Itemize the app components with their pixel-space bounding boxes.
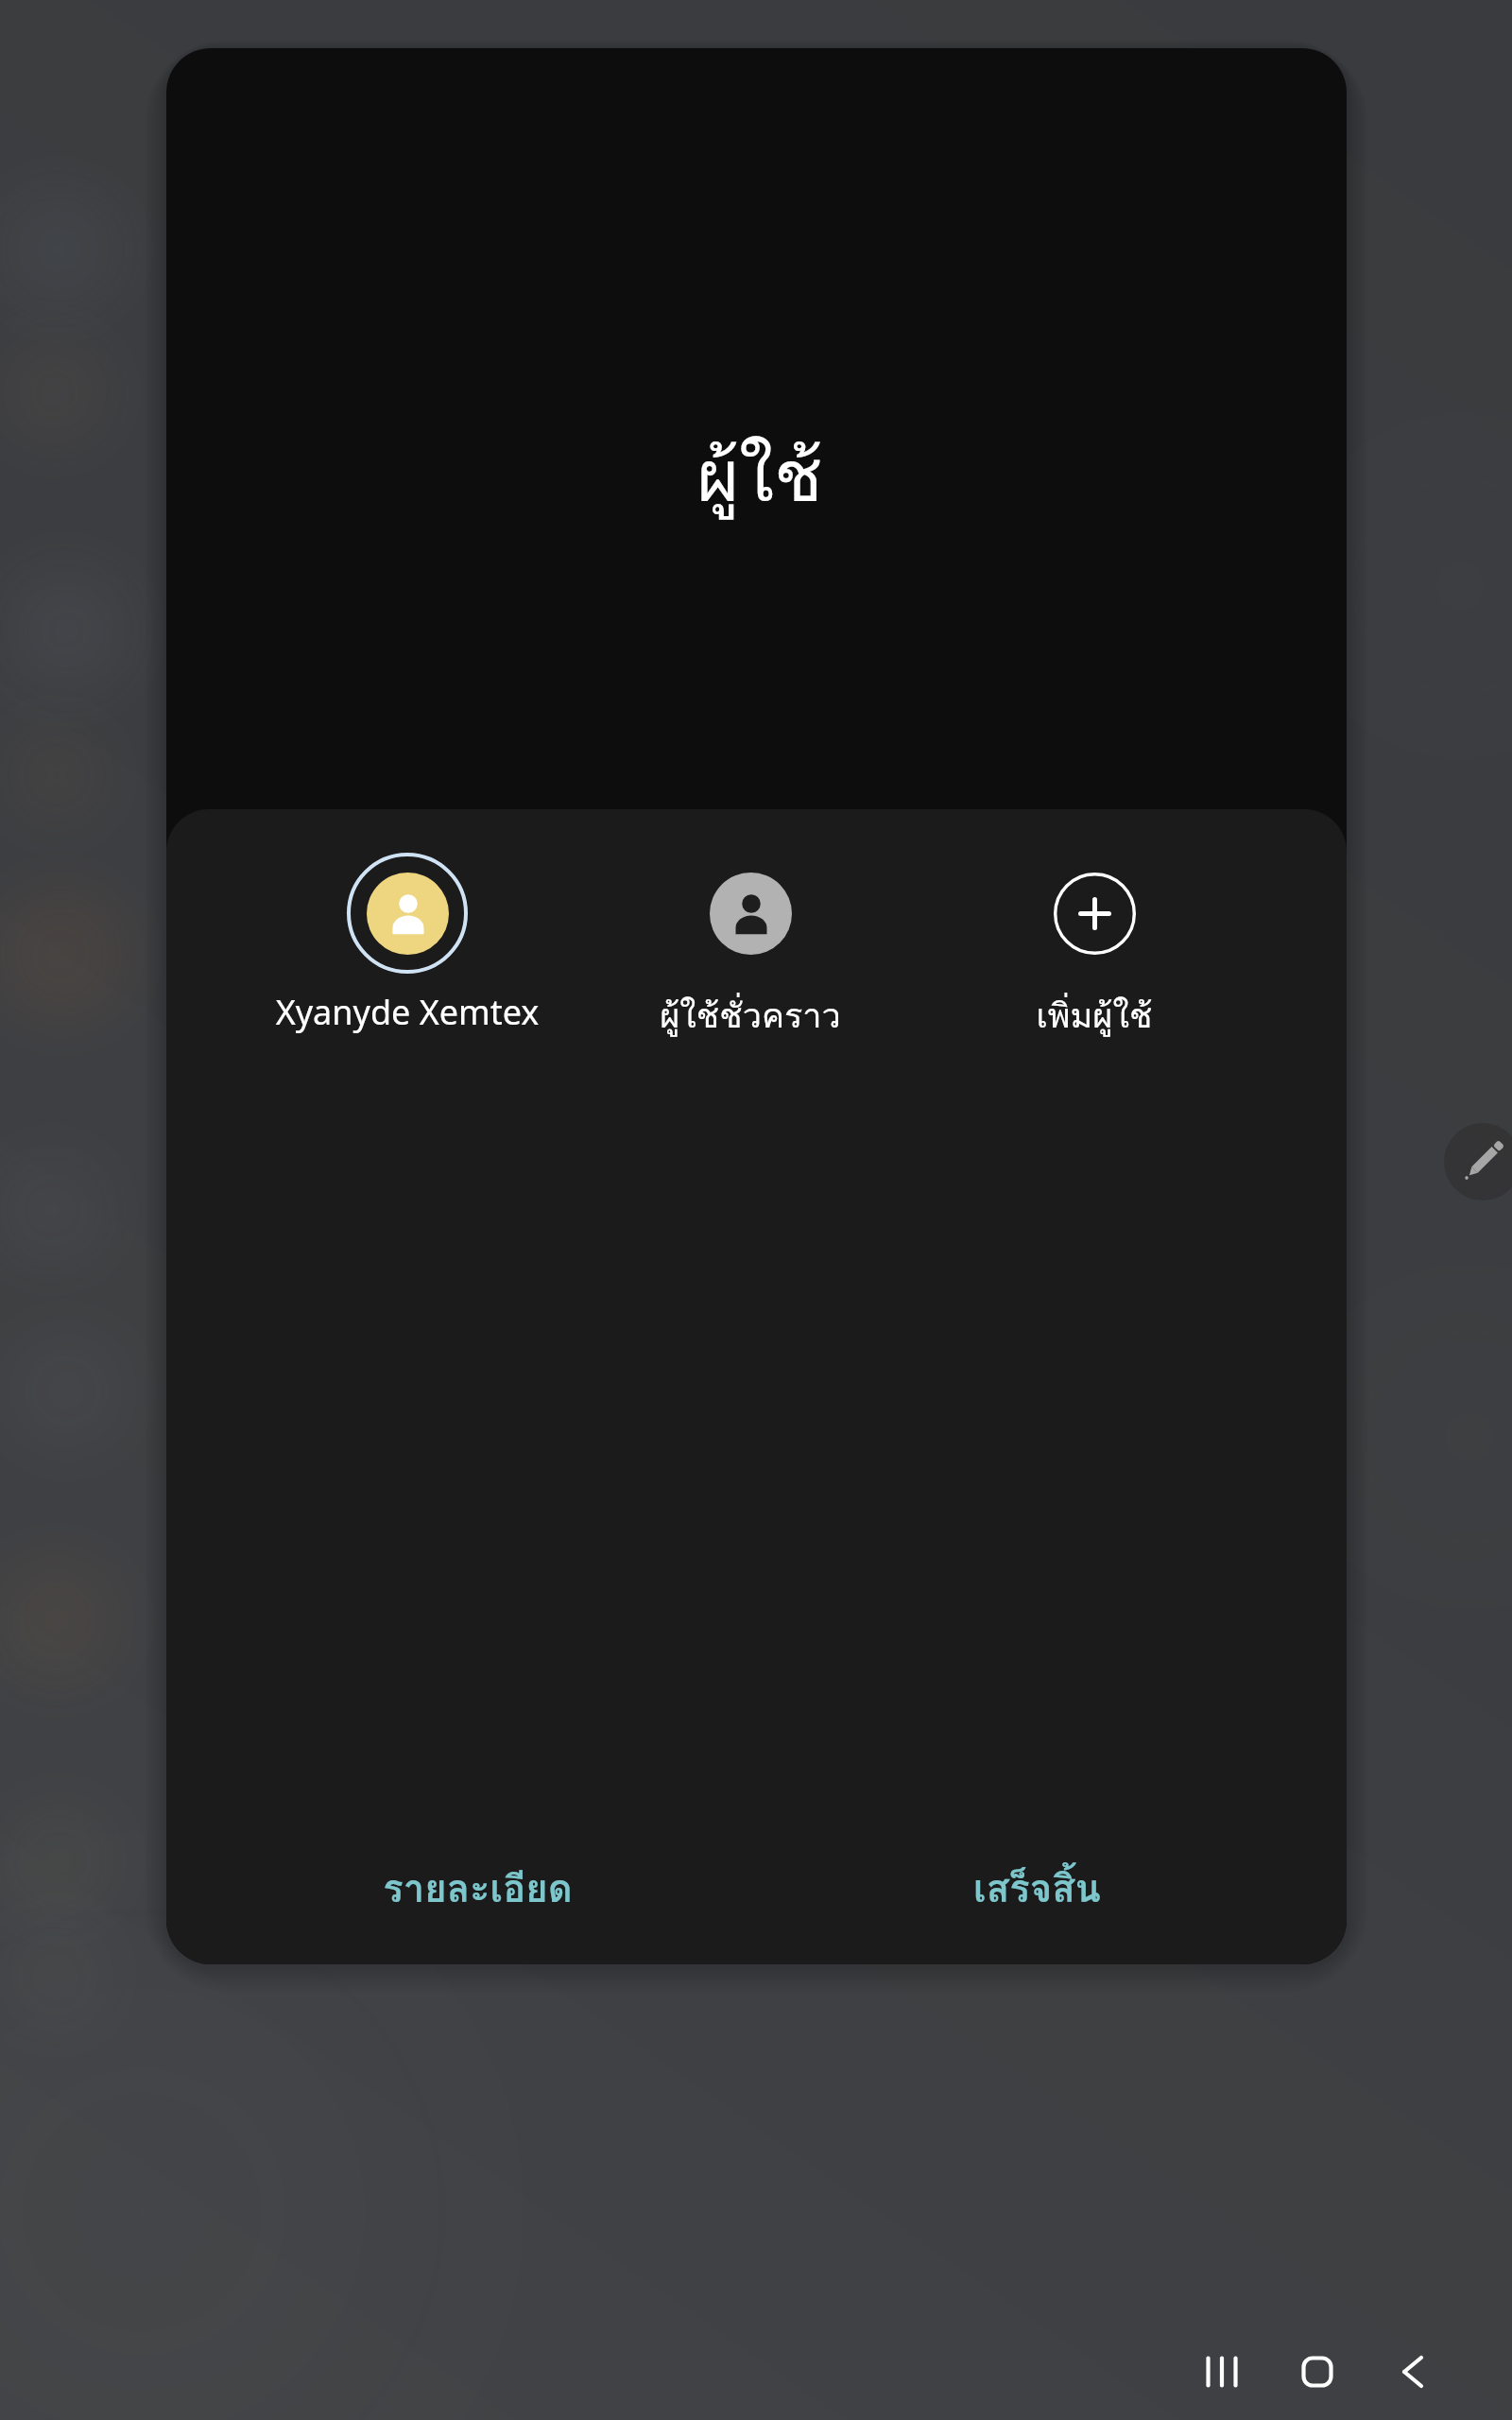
button[interactable]: Recents [1180, 2330, 1263, 2413]
button[interactable]: Home [1276, 2330, 1359, 2413]
button[interactable]: S Pen [1444, 1123, 1512, 1201]
button[interactable]: เสร็จสิ้น [876, 1841, 1197, 1936]
staticText: รายละเอียด [383, 1858, 573, 1919]
staticText: เสร็จสิ้น [973, 1858, 1101, 1919]
button[interactable]: Xyanyde Xemtex [247, 853, 568, 1070]
staticText: เพิ่มผู้ใช้ [934, 989, 1255, 1043]
staticText: ผู้ใช้ [696, 419, 823, 533]
button[interactable]: เพิ่มผู้ใช้ [934, 853, 1255, 1070]
button[interactable]: รายละเอียด [317, 1841, 638, 1936]
staticText: ผู้ใช้ชั่วคราว [590, 989, 911, 1043]
button[interactable]: ผู้ใช้ชั่วคราว [590, 853, 911, 1070]
button[interactable]: Back [1371, 2330, 1454, 2413]
staticText: Xyanyde Xemtex [247, 989, 568, 1035]
